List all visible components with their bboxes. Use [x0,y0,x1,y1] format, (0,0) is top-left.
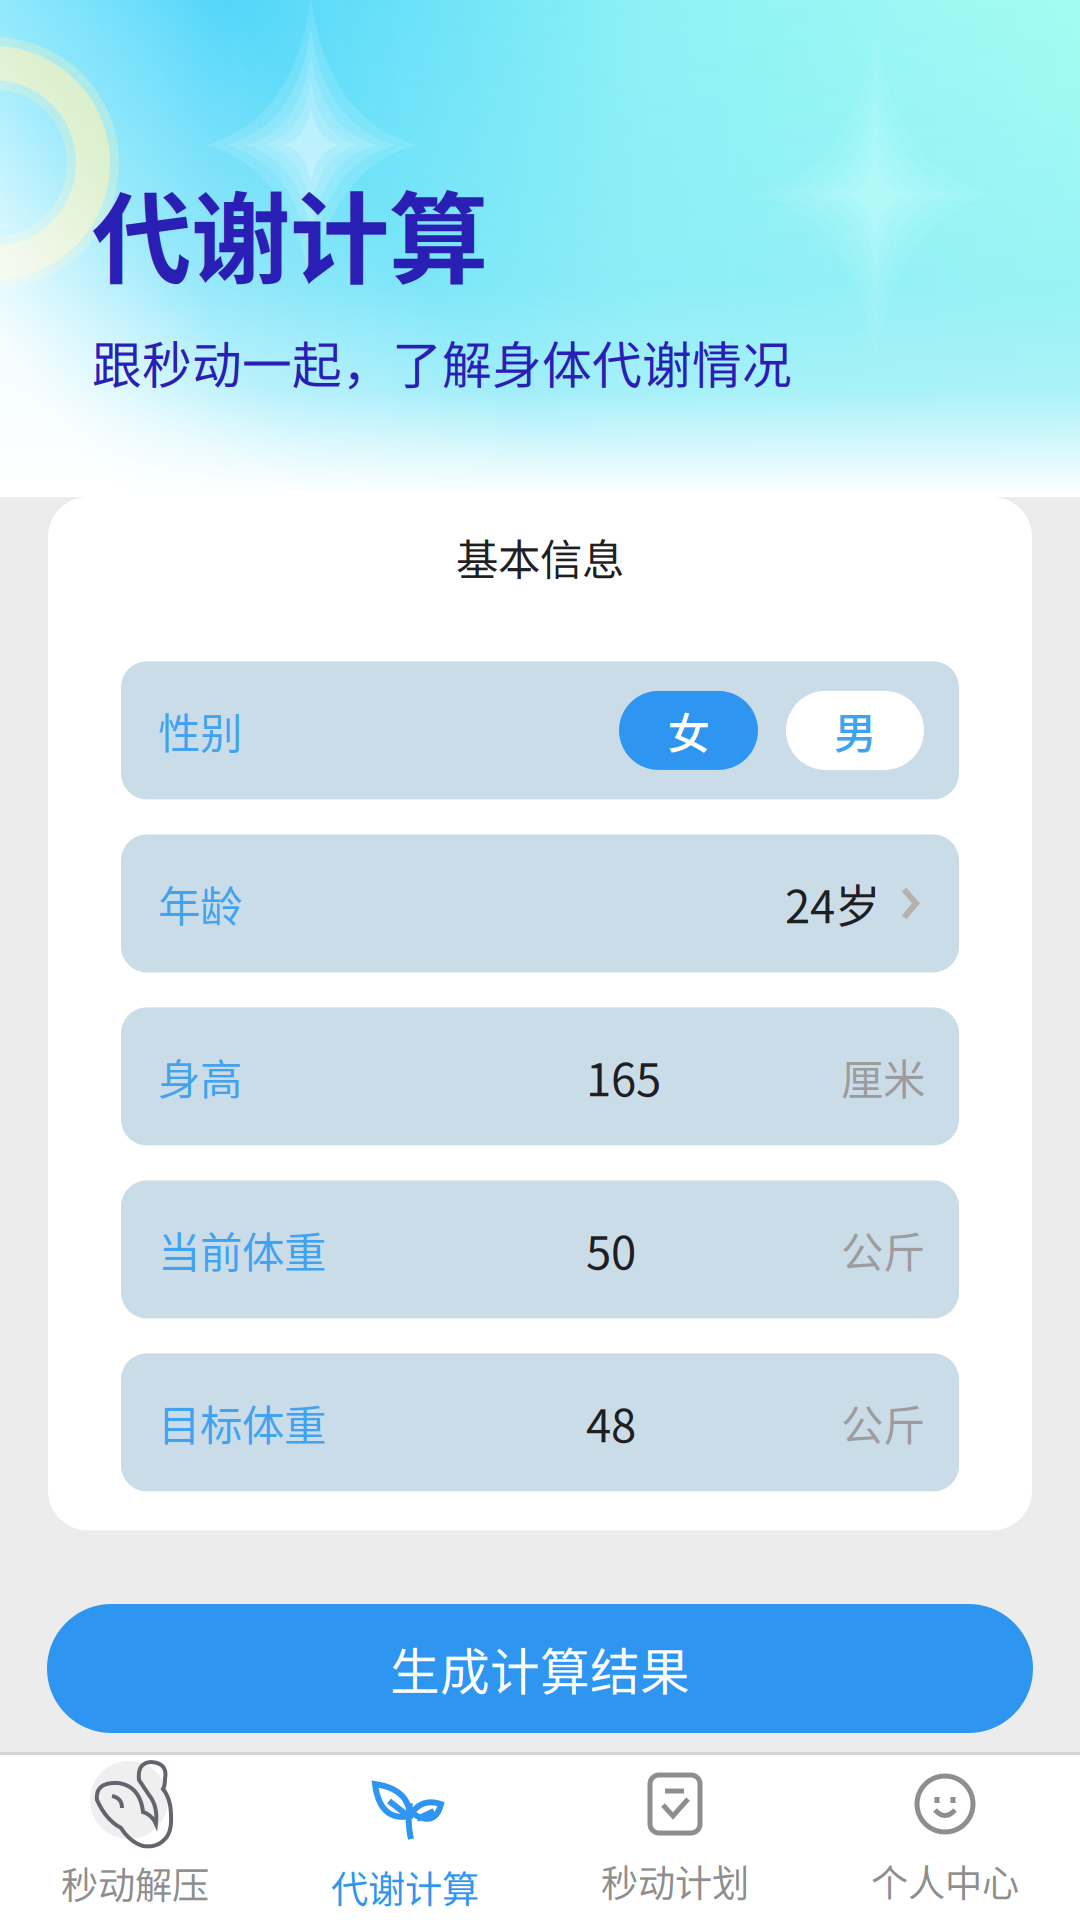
button[interactable]: 年龄 [121,834,959,972]
staticText: 代谢计算 [92,160,488,304]
staticText: 身高 [158,1046,242,1107]
button[interactable]: 男 [786,691,924,770]
button[interactable]: 当前体重 [121,1180,959,1318]
staticText: 年龄 [158,873,242,934]
staticText: 男 [834,700,876,761]
staticText: 目标体重 [158,1392,326,1453]
staticText: 当前体重 [158,1219,326,1280]
staticText: 代谢计算 [331,1860,479,1914]
staticText: 公斤 [841,1392,925,1453]
button[interactable]: 代谢计算 [270,1752,540,1920]
button[interactable]: 个人中心 [810,1752,1080,1920]
staticText: 秒动解压 [61,1856,209,1910]
staticText: 生成计算结果 [390,1633,690,1704]
button[interactable]: 身高 [121,1007,959,1145]
staticText: 24岁 [785,870,881,936]
button[interactable]: 秒动计划 [540,1752,810,1920]
staticText: 48 [586,1389,636,1455]
button[interactable]: 目标体重 [121,1353,959,1491]
staticText: 厘米 [841,1046,925,1107]
staticText: 跟秒动一起，了解身体代谢情况 [92,326,792,398]
button[interactable]: 生成计算结果 [47,1604,1033,1733]
staticText: 性别 [158,700,242,761]
staticText: 女 [667,700,709,761]
staticText: 165 [586,1043,661,1109]
staticText: 个人中心 [871,1854,1019,1908]
staticText: 50 [586,1216,636,1282]
staticText: 公斤 [841,1219,925,1280]
staticText: 基本信息 [456,526,624,587]
button[interactable]: 女 [619,691,758,770]
staticText: 秒动计划 [601,1854,749,1908]
button[interactable]: 秒动解压 [0,1752,270,1920]
